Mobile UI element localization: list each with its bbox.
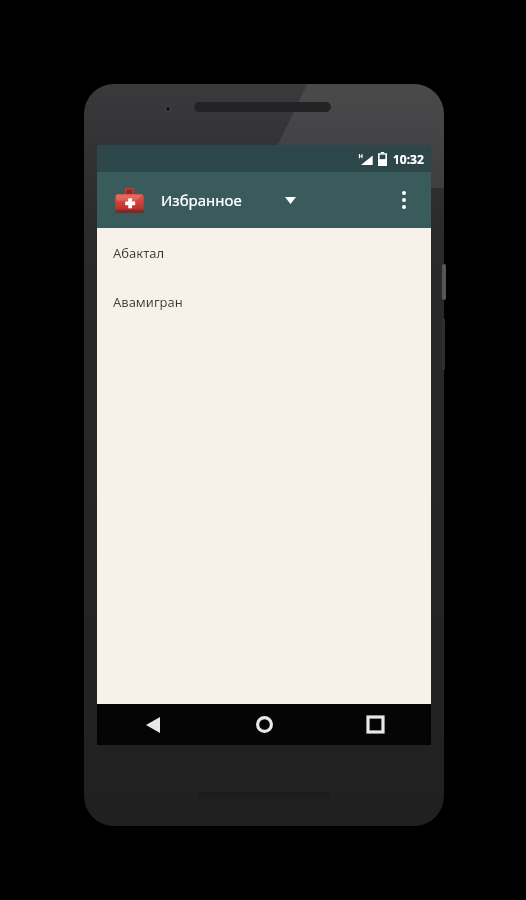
staticText: 10:32 — [393, 151, 424, 167]
staticText: Абактал — [113, 244, 165, 262]
staticText: Авамигран — [113, 293, 183, 311]
button[interactable]: App icon — [109, 180, 149, 220]
button[interactable]: Авамигран — [97, 277, 431, 326]
button[interactable]: Recent apps — [320, 704, 431, 745]
button[interactable]: Home — [209, 704, 320, 745]
button[interactable]: More options — [383, 172, 425, 228]
button[interactable]: Избранное — [161, 172, 383, 228]
button[interactable]: Back — [97, 704, 209, 745]
staticText: Избранное — [161, 190, 242, 210]
button[interactable]: Абактал — [97, 228, 431, 277]
